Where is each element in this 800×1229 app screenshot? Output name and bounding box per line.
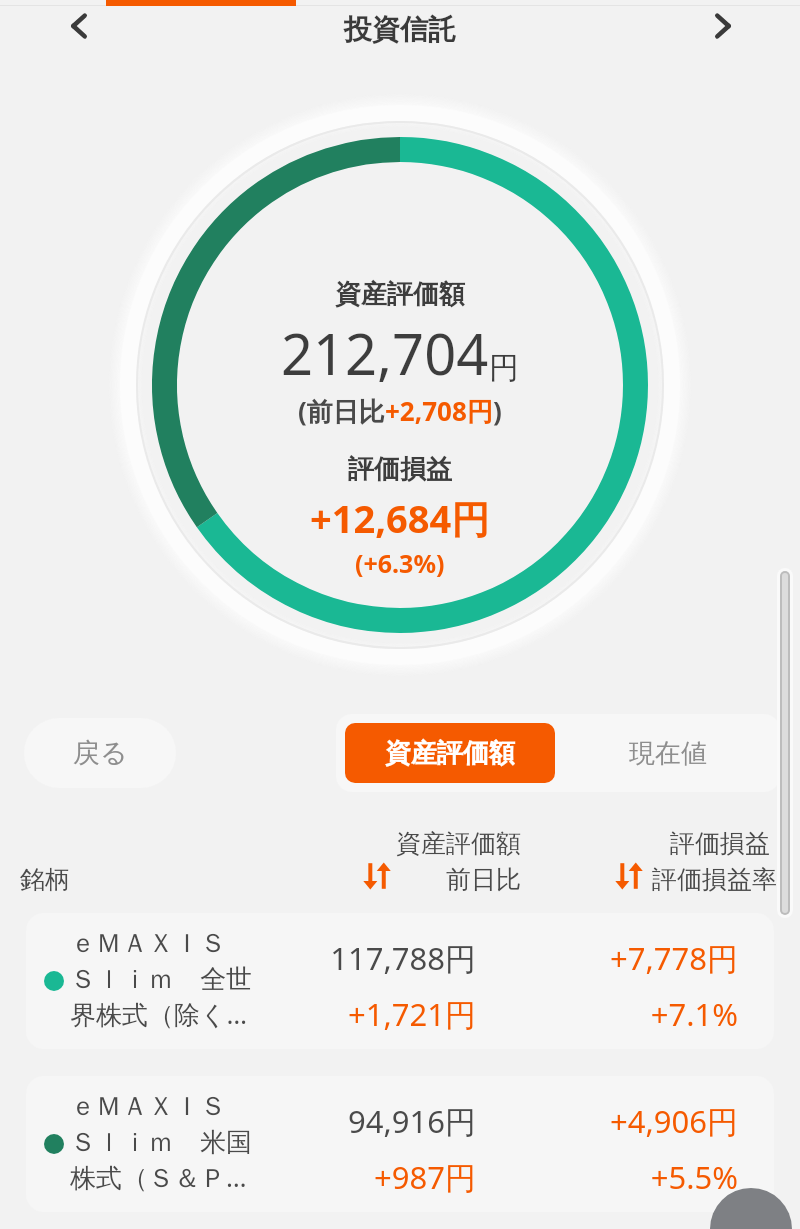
staticText: +987円 (374, 1156, 476, 1198)
staticText: 資産評価額 (385, 737, 515, 770)
staticText: +2,708円 (385, 393, 493, 429)
button[interactable]: 現在値 (564, 723, 771, 783)
button[interactable]: 資産評価額 (345, 723, 555, 783)
staticText: ｅＭＡＸＩＳ (70, 1090, 226, 1123)
button[interactable]: Next (692, 0, 754, 52)
button[interactable]: Sort by value (356, 856, 400, 896)
staticText: +4,906円 (610, 1100, 738, 1142)
staticText: 界株式（除く… (70, 996, 248, 1032)
staticText: +12,684円 (310, 492, 490, 544)
staticText: 212,704 (281, 315, 489, 391)
staticText: 資産評価額 (396, 828, 521, 859)
button[interactable]: Previous (48, 0, 110, 52)
staticText: 投資信託 (344, 12, 456, 47)
staticText: 現在値 (629, 737, 707, 770)
button[interactable]: ｅＭＡＸＩＳ (26, 913, 774, 1049)
staticText: 評価損益 (348, 453, 452, 486)
staticText: (前日比 (298, 393, 385, 429)
staticText: ｅＭＡＸＩＳ (70, 927, 226, 960)
staticText: +7.1% (650, 993, 738, 1035)
staticText: Ｓｌｉｍ 米国 (70, 1123, 252, 1159)
staticText: 円 (489, 349, 519, 387)
staticText: 前日比 (446, 864, 521, 895)
button[interactable]: Sort by gain (608, 856, 652, 896)
button[interactable]: ｅＭＡＸＩＳ (26, 1076, 774, 1212)
staticText: +5.5% (650, 1156, 738, 1198)
staticText: (+6.3%) (355, 546, 445, 580)
staticText: 117,788円 (330, 937, 476, 979)
staticText: Ｓｌｉｍ 全世 (70, 960, 252, 996)
staticText: +1,721円 (348, 993, 476, 1035)
staticText: 94,916円 (348, 1100, 476, 1142)
staticText: 資産評価額 (335, 278, 465, 311)
staticText: 株式（Ｓ＆Ｐ… (70, 1159, 247, 1195)
button[interactable]: 戻る (24, 718, 176, 788)
staticText: +7,778円 (610, 937, 738, 979)
staticText: ) (493, 393, 502, 428)
staticText: 評価損益 (670, 828, 770, 859)
button[interactable]: Add (710, 1188, 792, 1229)
staticText: 戻る (73, 736, 128, 770)
staticText: 銘柄 (20, 864, 70, 895)
staticText: 評価損益率 (652, 864, 777, 895)
